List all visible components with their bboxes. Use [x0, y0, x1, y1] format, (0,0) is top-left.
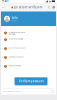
staticText: Verify my account	[18, 79, 43, 83]
staticText: AA	[2, 6, 4, 8]
button[interactable]: Help	[51, 90, 54, 93]
staticText: Protect your personal information	[9, 31, 25, 35]
button[interactable]: Finish verification	[4, 65, 53, 74]
staticText: Secure	[12, 20, 18, 22]
button[interactable]: Page settings	[2, 5, 5, 9]
button[interactable]: Verify my account	[14, 77, 47, 85]
button[interactable]: Confirm your identity	[4, 38, 53, 47]
staticText: Copyright · Privacy · Terms	[3, 90, 21, 92]
staticText: Confirm your identity	[9, 38, 23, 40]
button[interactable]: Reload	[48, 6, 51, 9]
staticText: Lulu	[12, 16, 18, 19]
staticText: Secure your account	[9, 47, 25, 49]
staticText: Review your devices	[9, 56, 24, 58]
button[interactable]: Protect your personal information	[4, 31, 53, 38]
staticText: 9:41	[2, 0, 9, 3]
button[interactable]: Review your devices	[4, 56, 53, 65]
button[interactable]: Secure your account	[4, 47, 53, 56]
staticText: go.secure-verify.com	[14, 5, 42, 9]
button[interactable]: Tabs	[52, 6, 55, 9]
staticText: Finish verification	[9, 65, 21, 67]
